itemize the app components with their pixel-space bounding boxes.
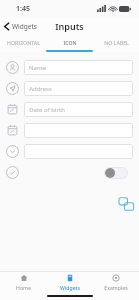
other: Toggle switch (104, 167, 128, 179)
staticText: Widgets (60, 284, 80, 291)
staticText: ICON (63, 39, 77, 46)
button[interactable]: NO LABEL (93, 35, 139, 49)
button[interactable]: Feedback (118, 196, 135, 213)
staticText: Date of birth (29, 106, 65, 114)
button[interactable]: Address (0, 78, 139, 99)
button[interactable]: Examples (93, 273, 139, 292)
button[interactable]: Date of birth (0, 99, 139, 120)
button[interactable]: ICON (47, 35, 93, 49)
button[interactable] (0, 141, 139, 162)
staticText: Inputs (55, 20, 84, 32)
button[interactable]: Toggle switch (0, 162, 139, 183)
staticText: Widgets (12, 22, 37, 31)
staticText: Examples (104, 284, 128, 291)
staticText: Address (29, 85, 52, 93)
button[interactable]: HORIZONTAL (0, 35, 47, 49)
staticText: Home (16, 284, 31, 291)
button[interactable]: Name (0, 57, 139, 78)
staticText: HORIZONTAL (7, 39, 40, 46)
button[interactable]: Home (0, 273, 47, 292)
button[interactable] (0, 120, 139, 141)
staticText: Name (29, 64, 46, 72)
button[interactable]: Widgets (0, 20, 43, 33)
staticText: NO LABEL (104, 39, 129, 46)
staticText: 1:45 (16, 4, 30, 14)
button[interactable]: Widgets (47, 273, 93, 292)
